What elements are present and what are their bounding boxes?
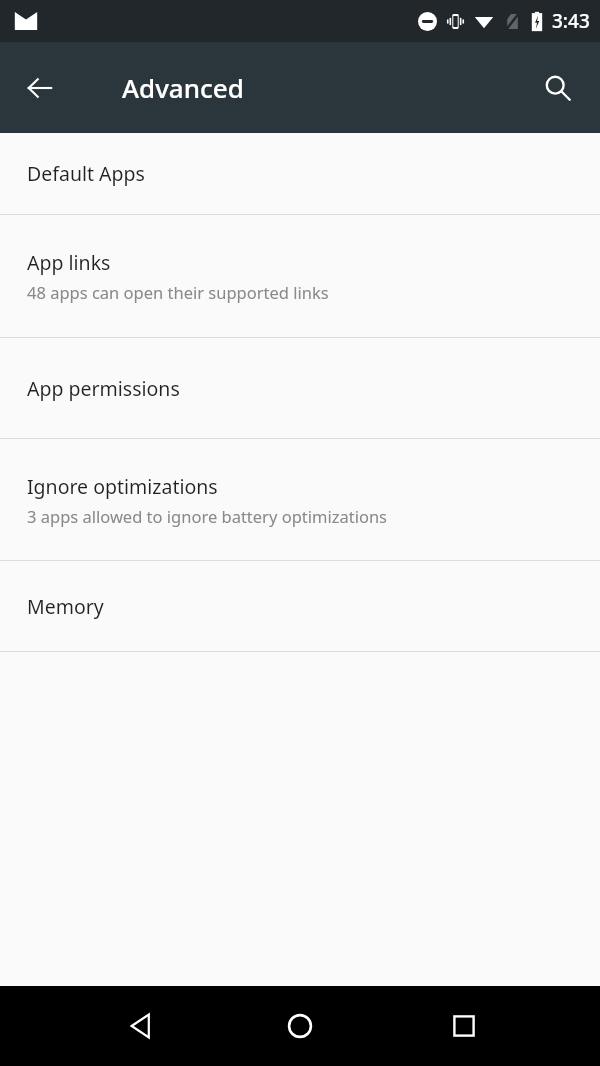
staticText: 3:43 (552, 8, 590, 34)
button[interactable]: Memory (0, 561, 600, 651)
button[interactable]: App permissions (0, 338, 600, 438)
button[interactable]: Recent apps (433, 995, 495, 1057)
button[interactable]: Back (110, 995, 172, 1057)
staticText: Advanced (122, 70, 244, 105)
staticText: Memory (27, 593, 104, 620)
staticText: 48 apps can open their supported links (27, 281, 329, 303)
staticText: App links (27, 249, 111, 276)
button[interactable]: Back (12, 60, 68, 116)
button[interactable]: App links (0, 215, 600, 337)
staticText: 3 apps allowed to ignore battery optimiz… (27, 505, 387, 527)
button[interactable]: Home (269, 995, 331, 1057)
staticText: App permissions (27, 375, 180, 402)
button[interactable]: Default Apps (0, 133, 600, 214)
staticText: Ignore optimizations (27, 473, 218, 500)
staticText: Default Apps (27, 160, 145, 187)
button[interactable]: Search (530, 60, 586, 116)
button[interactable]: Ignore optimizations (0, 439, 600, 560)
